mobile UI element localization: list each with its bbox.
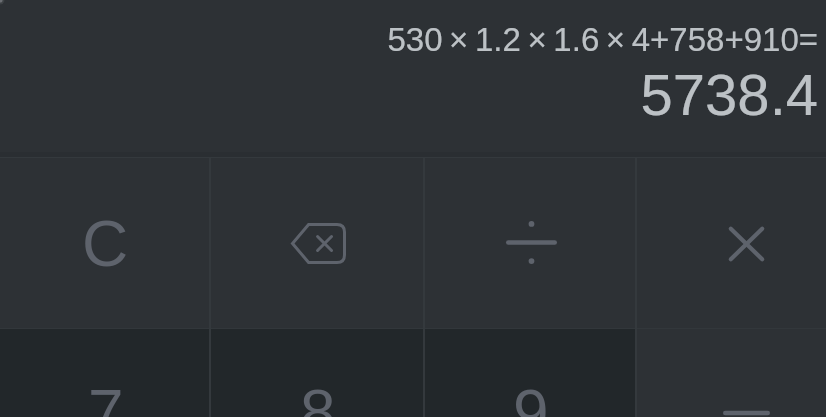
button[interactable]: Minus bbox=[637, 329, 826, 417]
button[interactable]: 7 bbox=[0, 329, 211, 417]
button[interactable]: 8 bbox=[211, 329, 425, 417]
button[interactable]: 9 bbox=[425, 329, 637, 417]
staticText: C bbox=[82, 208, 129, 280]
button[interactable]: Clear bbox=[0, 158, 211, 329]
staticText: 5738.4 bbox=[640, 62, 818, 127]
staticText: 9 bbox=[513, 377, 549, 417]
staticText: 530 × 1.2 × 1.6 × 4+758+910= bbox=[387, 21, 818, 58]
staticText: 7 bbox=[88, 377, 124, 417]
button[interactable]: Multiply bbox=[637, 158, 826, 329]
staticText: 8 bbox=[300, 377, 336, 417]
button[interactable]: Backspace bbox=[211, 158, 425, 329]
button[interactable]: Divide bbox=[425, 158, 637, 329]
